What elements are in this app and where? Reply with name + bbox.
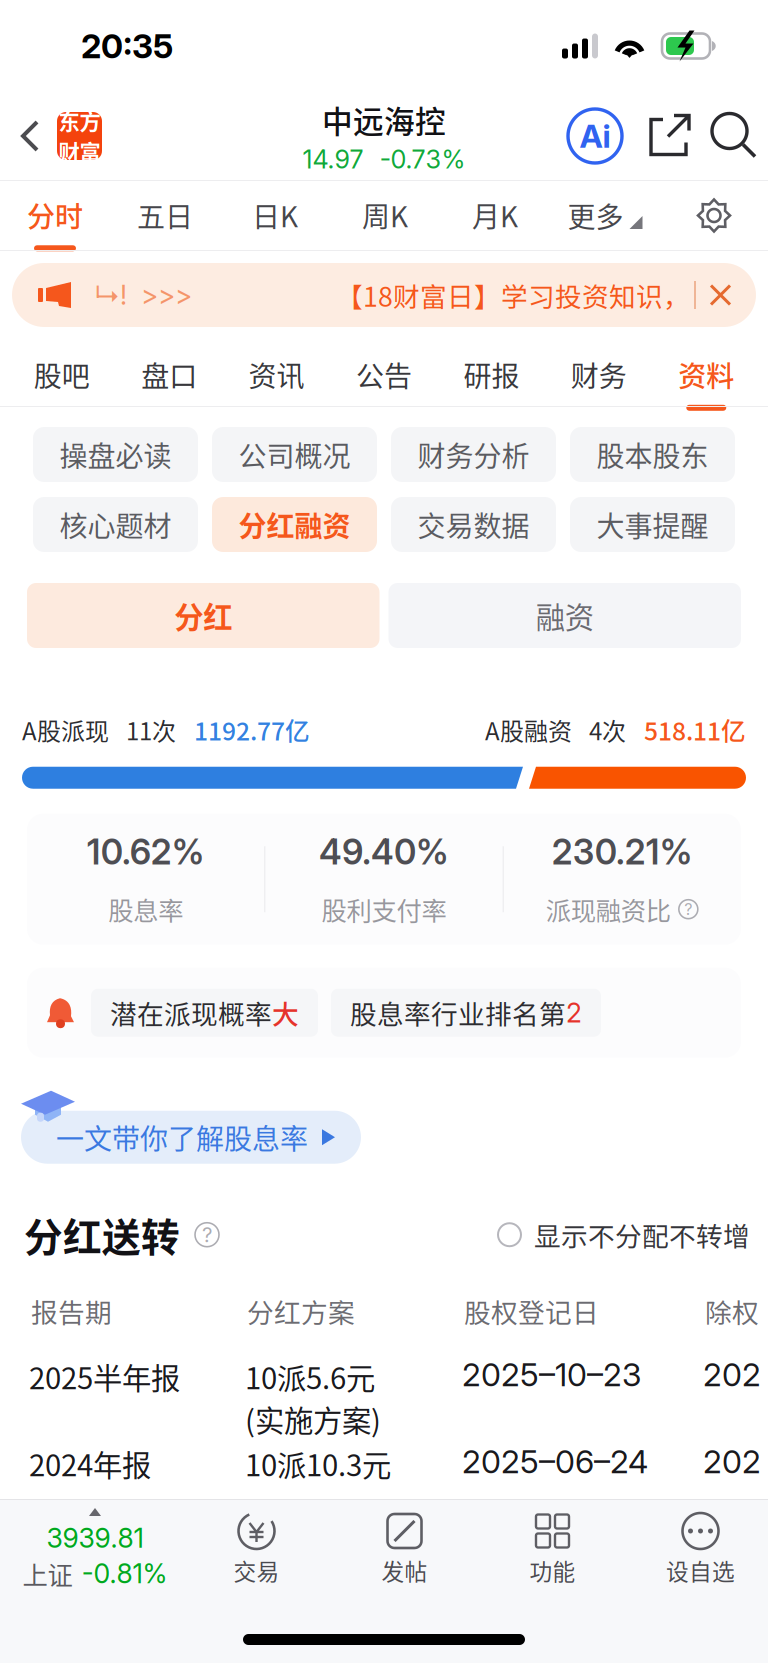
staticText: 报告期 bbox=[31, 1292, 112, 1330]
staticText: 发帖 bbox=[381, 1554, 427, 1587]
staticText: 派现融资比 bbox=[546, 891, 671, 927]
staticText: 202 bbox=[703, 1442, 761, 1481]
staticText: 财务分析 bbox=[417, 434, 529, 475]
button[interactable]: Chart settings bbox=[660, 181, 768, 250]
staticText: 股权登记日 bbox=[464, 1292, 599, 1330]
staticText: 功能 bbox=[529, 1554, 575, 1587]
staticText: (实施方案) bbox=[245, 1398, 381, 1440]
staticText: A股融资 bbox=[485, 712, 572, 747]
staticText: 14.97 bbox=[302, 144, 363, 175]
button[interactable]: 股本股东 bbox=[570, 427, 735, 482]
button[interactable]: 股吧 bbox=[8, 340, 115, 406]
staticText: 20:35 bbox=[81, 26, 173, 66]
button[interactable]: 资讯 bbox=[223, 340, 330, 406]
staticText: 大事提醒 bbox=[596, 504, 708, 545]
button[interactable]: 核心题材 bbox=[33, 497, 198, 552]
button[interactable]: 融资 bbox=[388, 583, 741, 648]
staticText: 11次 bbox=[126, 712, 176, 747]
staticText: 10派5.6元 bbox=[245, 1355, 375, 1398]
staticText: -0.73% bbox=[379, 144, 465, 175]
staticText: 2 bbox=[566, 997, 582, 1029]
button[interactable]: AI assistant bbox=[567, 108, 623, 164]
staticText: 显示不分配不转增 bbox=[534, 1215, 750, 1254]
staticText: 日K bbox=[252, 195, 298, 235]
button[interactable]: 月K bbox=[440, 181, 550, 250]
staticText: 五日 bbox=[137, 195, 193, 235]
staticText: 分红 bbox=[174, 594, 232, 637]
staticText: 更多 bbox=[567, 195, 623, 236]
staticText: 交易 bbox=[233, 1554, 279, 1587]
button[interactable]: Share bbox=[648, 113, 692, 158]
staticText: 财富 bbox=[58, 136, 100, 167]
button[interactable]: ↳! >>> bbox=[12, 263, 756, 327]
staticText: 2025–10–23 bbox=[462, 1355, 641, 1394]
staticText: 上证 bbox=[22, 1555, 72, 1592]
button[interactable]: 更多 bbox=[550, 181, 660, 250]
button[interactable]: 交易数据 bbox=[391, 497, 556, 552]
staticText: 公司概况 bbox=[238, 434, 350, 475]
staticText: 股息率行业排名第 bbox=[350, 993, 566, 1032]
staticText: 盘口 bbox=[141, 354, 197, 395]
staticText: 研报 bbox=[463, 354, 519, 395]
staticText: 2025–06–24 bbox=[462, 1442, 648, 1481]
staticText: 股本股东 bbox=[596, 434, 708, 475]
button[interactable]: 操盘必读 bbox=[33, 427, 198, 482]
staticText: 操盘必读 bbox=[59, 434, 171, 475]
button[interactable]: 公告 bbox=[330, 340, 438, 406]
staticText: A股派现 bbox=[22, 712, 109, 747]
staticText: 中远海控 bbox=[322, 97, 446, 142]
button[interactable]: 公司概况 bbox=[212, 427, 377, 482]
staticText: 10派10.3元 bbox=[245, 1442, 391, 1485]
staticText: 交易数据 bbox=[417, 504, 529, 545]
staticText: 2025半年报 bbox=[29, 1355, 180, 1398]
button[interactable]: 分红融资 bbox=[212, 497, 377, 552]
staticText: 49.40% bbox=[319, 831, 449, 873]
staticText: 股吧 bbox=[34, 354, 90, 395]
staticText: 分红方案 bbox=[247, 1292, 355, 1330]
button[interactable]: 财务分析 bbox=[391, 427, 556, 482]
button[interactable]: 设自选 bbox=[626, 1500, 768, 1600]
button[interactable]: Search bbox=[712, 113, 757, 158]
button[interactable]: 功能 bbox=[478, 1500, 626, 1600]
staticText: 除权 bbox=[705, 1292, 759, 1330]
staticText: 3939.81 bbox=[46, 1522, 143, 1554]
staticText: 股息率 bbox=[108, 891, 183, 927]
staticText: 资料 bbox=[678, 354, 734, 395]
button[interactable]: 潜在派现概率 bbox=[91, 989, 318, 1037]
button[interactable]: 研报 bbox=[438, 340, 545, 406]
button[interactable]: 股息率行业排名第 bbox=[331, 989, 601, 1037]
staticText: 周K bbox=[362, 195, 408, 235]
button[interactable]: 资料 bbox=[653, 340, 760, 406]
button[interactable]: 交易 bbox=[182, 1500, 330, 1600]
button[interactable]: 日K bbox=[220, 181, 330, 250]
button[interactable]: 一文带你了解股息率 bbox=[21, 1111, 361, 1164]
staticText: 一文带你了解股息率 bbox=[56, 1117, 308, 1157]
button[interactable]: 大事提醒 bbox=[570, 497, 735, 552]
staticText: 潜在派现概率 bbox=[110, 993, 272, 1032]
button[interactable]: 财务 bbox=[545, 340, 652, 406]
button[interactable]: 发帖 bbox=[330, 1500, 478, 1600]
staticText: 月K bbox=[472, 195, 518, 235]
button[interactable]: 盘口 bbox=[115, 340, 223, 406]
staticText: 4次 bbox=[589, 712, 626, 747]
button[interactable]: 周K bbox=[330, 181, 440, 250]
button[interactable]: 分时 bbox=[0, 181, 110, 250]
staticText: 设自选 bbox=[666, 1554, 735, 1587]
staticText: Ai bbox=[579, 117, 610, 155]
staticText: 【18财富日】学习投资知识，有机 bbox=[336, 276, 727, 314]
staticText: 资讯 bbox=[249, 354, 305, 395]
staticText: 2024年报 bbox=[29, 1442, 151, 1485]
staticText: 公告 bbox=[356, 354, 412, 395]
staticText: 230.21% bbox=[552, 831, 693, 873]
button[interactable]: 显示不分配不转增 bbox=[498, 1215, 750, 1254]
button[interactable]: East Money home bbox=[57, 112, 102, 160]
button[interactable]: 分红 bbox=[27, 583, 379, 648]
button[interactable]: Back bbox=[0, 102, 57, 170]
button[interactable]: 五日 bbox=[110, 181, 220, 250]
staticText: 融资 bbox=[536, 594, 594, 637]
staticText: -0.81% bbox=[81, 1557, 167, 1590]
staticText: 202 bbox=[703, 1355, 761, 1394]
staticText: 东方 bbox=[58, 105, 100, 136]
button[interactable]: 3939.81 bbox=[0, 1500, 182, 1600]
staticText: 股利支付率 bbox=[321, 891, 446, 927]
